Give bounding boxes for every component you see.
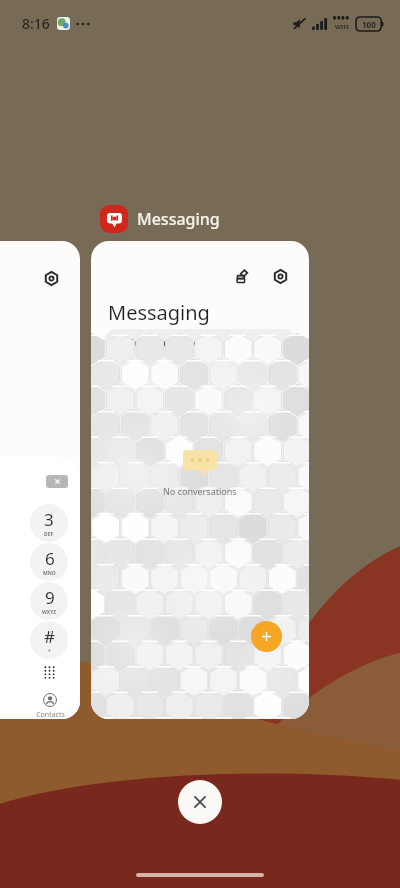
staticText: DEF — [44, 531, 54, 538]
staticText: 3 — [44, 508, 54, 531]
staticText: # — [44, 625, 55, 648]
button[interactable]: Close all — [178, 780, 222, 824]
button[interactable]: 3 — [30, 504, 68, 542]
staticText: 100 — [362, 19, 376, 30]
button[interactable]: Messaging — [98, 203, 222, 235]
button[interactable]: # — [30, 621, 68, 659]
button[interactable]: Keypad — [39, 662, 59, 682]
button[interactable]: Settings — [0, 241, 80, 719]
staticText: Messaging — [108, 299, 210, 326]
staticText: MNO — [43, 570, 56, 577]
button[interactable]: Settings — [267, 263, 293, 289]
staticText: 9 — [45, 586, 55, 609]
staticText: WIFI — [335, 23, 349, 31]
staticText: Contacts — [36, 710, 65, 719]
button[interactable]: 6 — [30, 543, 68, 581]
button[interactable]: Clean up — [229, 263, 255, 289]
staticText: Messaging — [137, 208, 220, 230]
staticText: 6 — [45, 547, 55, 570]
button[interactable]: Clean up — [91, 241, 309, 719]
button[interactable]: Backspace — [46, 475, 68, 488]
button[interactable]: 9 — [30, 582, 68, 620]
button[interactable]: Search messages — [104, 329, 296, 354]
button[interactable]: New conversation — [251, 621, 282, 652]
button[interactable]: Settings — [38, 265, 64, 291]
staticText: + — [48, 648, 51, 655]
staticText: No conversations — [163, 485, 237, 497]
staticText: Search messages — [129, 336, 203, 348]
staticText: WXYZ — [42, 609, 57, 616]
staticText: 8:16 — [22, 14, 50, 33]
button[interactable]: Contacts — [24, 693, 76, 719]
